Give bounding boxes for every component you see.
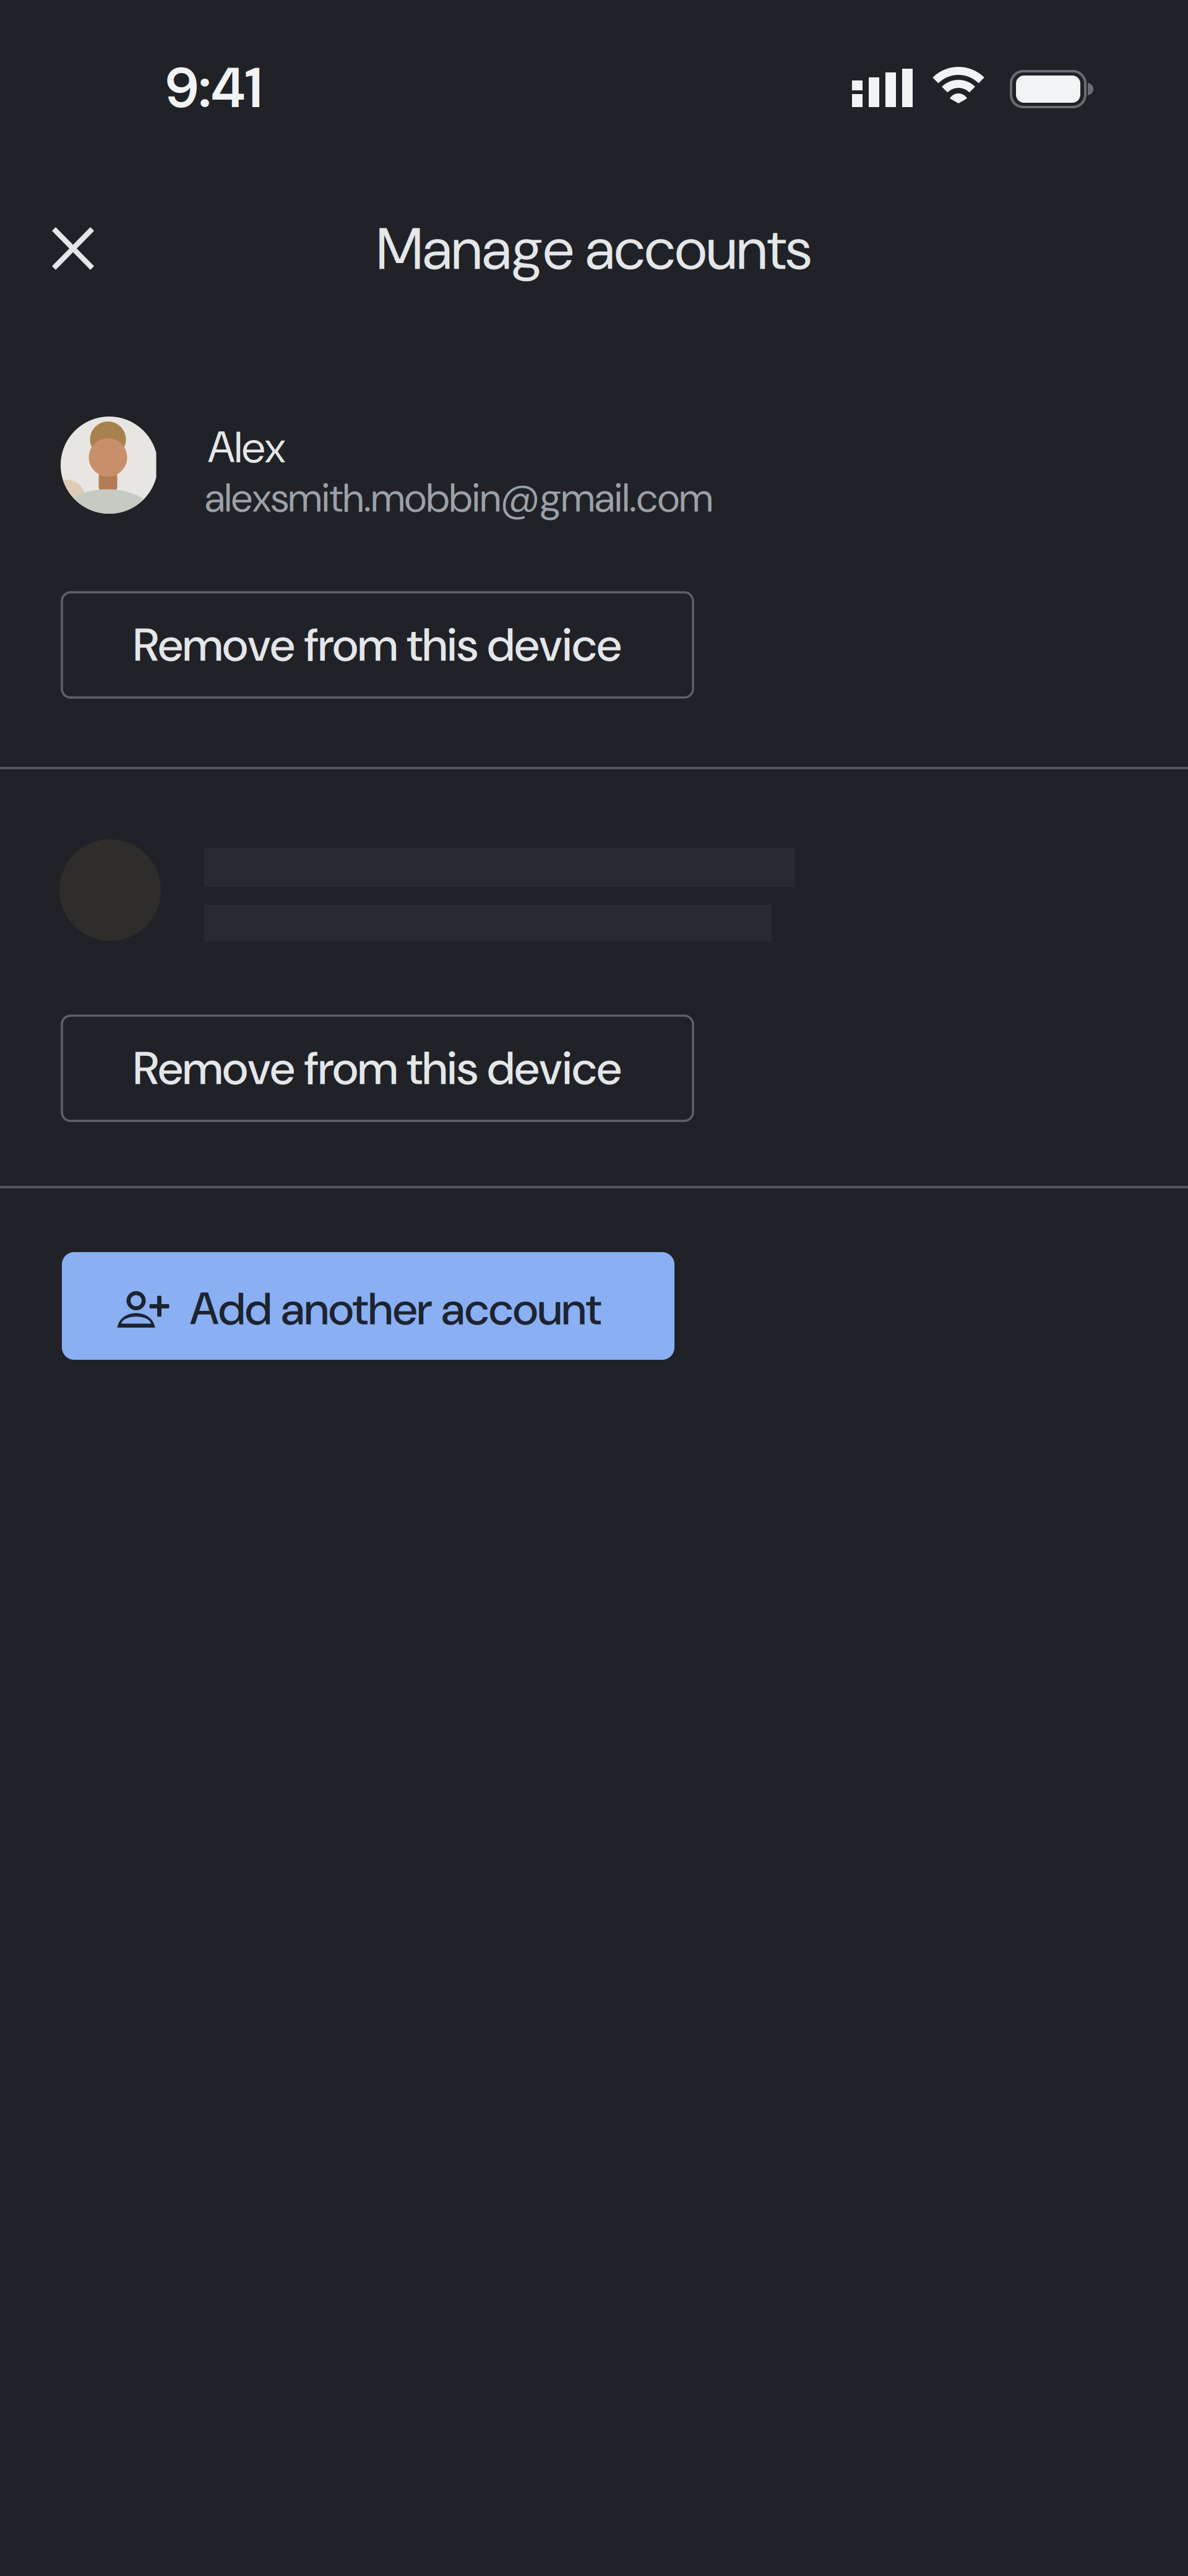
staticText: Manage accounts <box>377 212 811 287</box>
staticText: 9:41 <box>166 51 262 124</box>
button[interactable]: Remove from this device <box>62 592 693 698</box>
button[interactable]: Add another account <box>62 1252 674 1360</box>
button[interactable]: Remove from this device <box>62 1016 693 1121</box>
staticText: alexsmith.mobbin@gmail.com <box>205 472 713 524</box>
staticText: Remove from this device <box>133 615 622 675</box>
staticText: Remove from this device <box>133 1038 622 1098</box>
staticText: Alex <box>208 419 285 476</box>
staticText: Add another account <box>190 1279 601 1338</box>
button[interactable]: Close <box>35 210 111 287</box>
